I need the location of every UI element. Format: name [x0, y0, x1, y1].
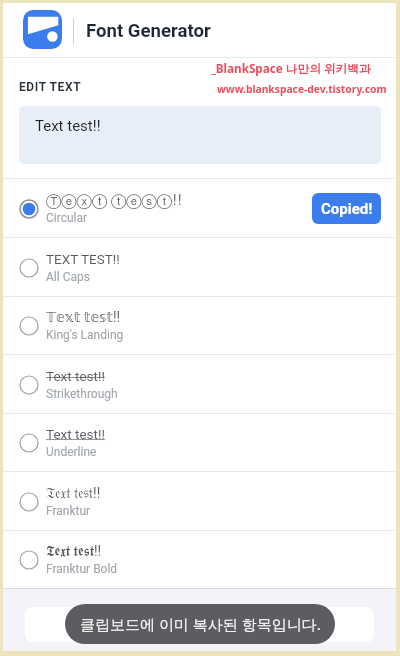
staticText: Text test!!: [46, 426, 105, 442]
button[interactable]: Text test!!: [3, 413, 396, 472]
button[interactable]: Text test!!: [3, 355, 396, 414]
button[interactable]: Copied!: [312, 193, 381, 224]
staticText: 𝕿𝖊𝖝𝖙 𝖙𝖊𝖘𝖙!!: [46, 543, 102, 559]
button[interactable]: [25, 607, 374, 642]
staticText: Underline: [46, 445, 97, 459]
staticText: EDIT TEXT: [19, 80, 82, 94]
staticText: Text test!!: [35, 117, 101, 135]
staticText: 𝕋𝕖𝕩𝕥 𝕥𝕖𝕤𝕥!!: [46, 309, 121, 325]
staticText: Copied!: [321, 200, 373, 218]
staticText: Strikethrough: [46, 387, 118, 401]
button[interactable]: Font Generator app icon: [23, 10, 62, 49]
staticText: _BlankSpace 나만의 위키백과: [211, 60, 371, 76]
button[interactable]: 𝔗𝔢𝔵𝔱 𝔱𝔢𝔰𝔱!!: [3, 472, 396, 531]
button[interactable]: 𝕿𝖊𝖝𝖙 𝖙𝖊𝖘𝖙!!: [3, 530, 396, 589]
staticText: TEXT TEST!!: [46, 251, 120, 267]
staticText: 클립보드에 이미 복사된 항목입니다.: [80, 614, 321, 634]
staticText: Text test!!: [46, 368, 105, 384]
staticText: Ⓣⓔⓧⓣ ⓣⓔⓢⓣ!!: [46, 193, 183, 208]
staticText: Franktur: [46, 504, 91, 518]
staticText: 𝔗𝔢𝔵𝔱 𝔱𝔢𝔰𝔱!!: [46, 485, 101, 501]
staticText: Font Generator: [86, 20, 211, 42]
staticText: All Caps: [46, 270, 90, 284]
staticText: Circular: [46, 211, 88, 225]
staticText: King's Landing: [46, 328, 124, 342]
staticText: www.blankspace-dev.tistory.com: [217, 82, 387, 96]
button[interactable]: 𝕋𝕖𝕩𝕥 𝕥𝕖𝕤𝕥!!: [3, 296, 396, 355]
staticText: Franktur Bold: [46, 562, 118, 576]
button[interactable]: Ⓣⓔⓧⓣ ⓣⓔⓢⓣ!!: [3, 179, 396, 238]
button[interactable]: Text test!!: [19, 106, 381, 164]
button[interactable]: TEXT TEST!!: [3, 238, 396, 297]
